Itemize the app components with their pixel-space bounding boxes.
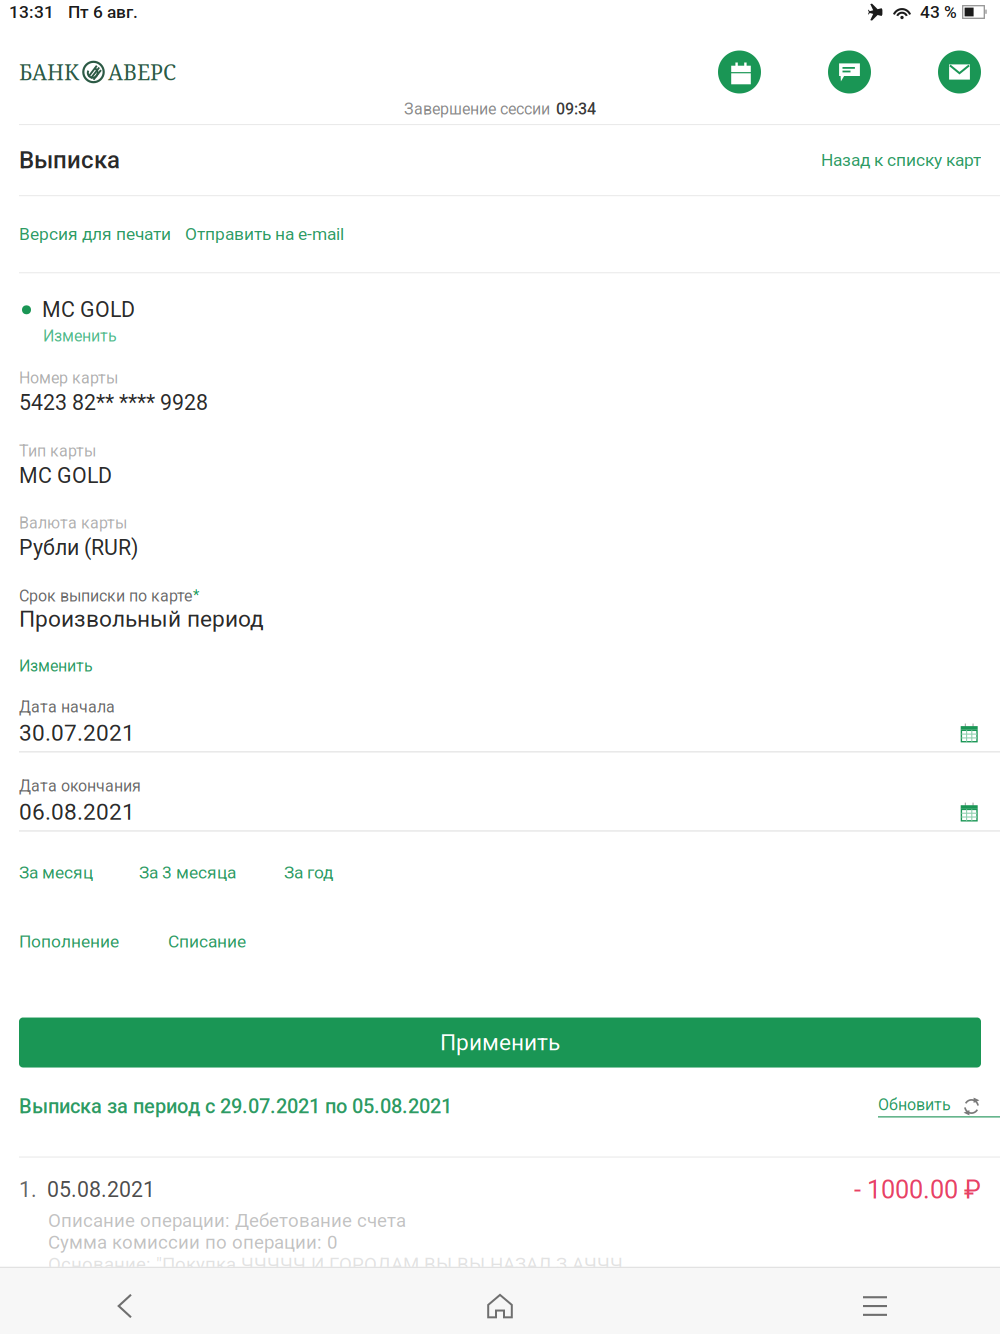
staticText: Срок выписки по карте bbox=[19, 586, 192, 605]
button[interactable]: Изменить bbox=[19, 651, 981, 675]
staticText: 5423 82** **** 9928 bbox=[19, 390, 208, 415]
staticText: 30.07.2021 bbox=[19, 720, 135, 746]
staticText: Номер карты bbox=[19, 369, 118, 387]
button[interactable]: Изменить bbox=[43, 322, 981, 345]
staticText: Списание bbox=[168, 931, 246, 952]
button[interactable]: Назад к списку карт bbox=[821, 150, 981, 170]
staticText: Пополнение bbox=[19, 931, 119, 952]
button[interactable]: Календарь bbox=[718, 50, 761, 93]
staticText: MC GOLD bbox=[42, 297, 135, 322]
staticText: * bbox=[193, 586, 199, 604]
button[interactable]: Отправить на e-mail bbox=[185, 224, 344, 244]
button[interactable]: Применить bbox=[19, 1017, 981, 1067]
button[interactable]: За 3 месяца bbox=[139, 860, 236, 884]
staticText: Отправить на e-mail bbox=[185, 224, 344, 244]
staticText: 05.08.2021 bbox=[47, 1177, 155, 1202]
staticText: Версия для печати bbox=[19, 224, 171, 244]
staticText: Завершение сессии bbox=[404, 100, 550, 118]
button[interactable]: Списание bbox=[168, 929, 246, 953]
staticText: Пт 6 авг. bbox=[68, 2, 138, 22]
staticText: Выписка за период с 29.07.2021 по 05.08.… bbox=[19, 1095, 452, 1118]
button[interactable]: Обновить bbox=[878, 1095, 981, 1117]
staticText: Произвольный период bbox=[19, 606, 264, 632]
button[interactable]: Выбрать дату bbox=[960, 803, 981, 822]
button[interactable]: За год bbox=[284, 860, 333, 884]
button[interactable]: Сообщения bbox=[828, 50, 871, 93]
button[interactable]: Назад bbox=[0, 1263, 250, 1334]
staticText: За год bbox=[284, 862, 333, 883]
staticText: Описание операции: Дебетование счета bbox=[48, 1210, 406, 1231]
button[interactable]: Пополнение bbox=[19, 929, 119, 953]
staticText: АВЕРС bbox=[108, 57, 176, 87]
staticText: За 3 месяца bbox=[139, 862, 236, 883]
staticText: Рубли (RUR) bbox=[19, 535, 138, 560]
staticText: Изменить bbox=[43, 327, 117, 345]
button[interactable]: За месяц bbox=[19, 860, 93, 884]
staticText: Дата окончания bbox=[19, 777, 141, 795]
staticText: Изменить bbox=[19, 656, 93, 675]
staticText: 13:31 bbox=[9, 2, 54, 22]
staticText: MC GOLD bbox=[19, 463, 112, 488]
staticText: За месяц bbox=[19, 862, 93, 883]
staticText: - 1000.00 ₽ bbox=[854, 1175, 981, 1205]
button[interactable]: Меню bbox=[750, 1263, 1000, 1334]
staticText: Валюта карты bbox=[19, 513, 127, 532]
staticText: БАНК bbox=[19, 57, 79, 87]
button[interactable]: Домой bbox=[375, 1263, 625, 1334]
staticText: Дата начала bbox=[19, 697, 115, 716]
staticText: 43 % bbox=[920, 2, 957, 22]
staticText: Применить bbox=[440, 1029, 560, 1056]
staticText: 06.08.2021 bbox=[19, 799, 135, 825]
staticText: Основание: "Покупка ЧЧЧЧЧ И ГОРОДАМ ВЫ В… bbox=[48, 1253, 623, 1275]
staticText: Тип карты bbox=[19, 442, 96, 460]
staticText: 09:34 bbox=[556, 100, 596, 118]
staticText: Выписка bbox=[19, 146, 120, 174]
staticText: Сумма комиссии по операции: 0 bbox=[48, 1231, 337, 1253]
staticText: Обновить bbox=[878, 1095, 951, 1114]
staticText: Назад к списку карт bbox=[821, 150, 981, 170]
staticText: 1. bbox=[19, 1177, 37, 1202]
button[interactable]: Версия для печати bbox=[19, 224, 171, 244]
button[interactable]: Почта bbox=[938, 50, 981, 93]
button[interactable]: Выбрать дату bbox=[960, 723, 981, 742]
